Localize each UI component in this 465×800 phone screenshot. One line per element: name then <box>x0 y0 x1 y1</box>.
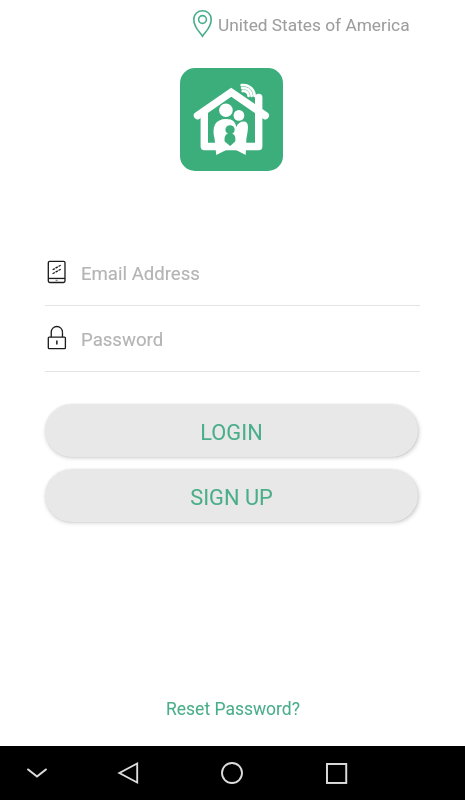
button[interactable]: Change location <box>188 9 413 39</box>
button[interactable]: Back <box>74 746 178 800</box>
button[interactable]: LOGIN <box>45 404 418 457</box>
staticText: Password <box>81 329 164 351</box>
button[interactable]: Home <box>178 746 282 800</box>
button[interactable]: Recents <box>282 746 386 800</box>
button[interactable]: SIGN UP <box>45 469 418 522</box>
staticText: LOGIN <box>200 420 263 446</box>
staticText: Email Address <box>81 263 200 285</box>
button[interactable]: Hide keyboard <box>0 746 74 800</box>
button[interactable]: Reset Password? <box>157 691 310 728</box>
staticText: United States of America <box>218 15 410 35</box>
staticText: Reset Password? <box>166 699 301 720</box>
staticText: SIGN UP <box>190 485 273 511</box>
